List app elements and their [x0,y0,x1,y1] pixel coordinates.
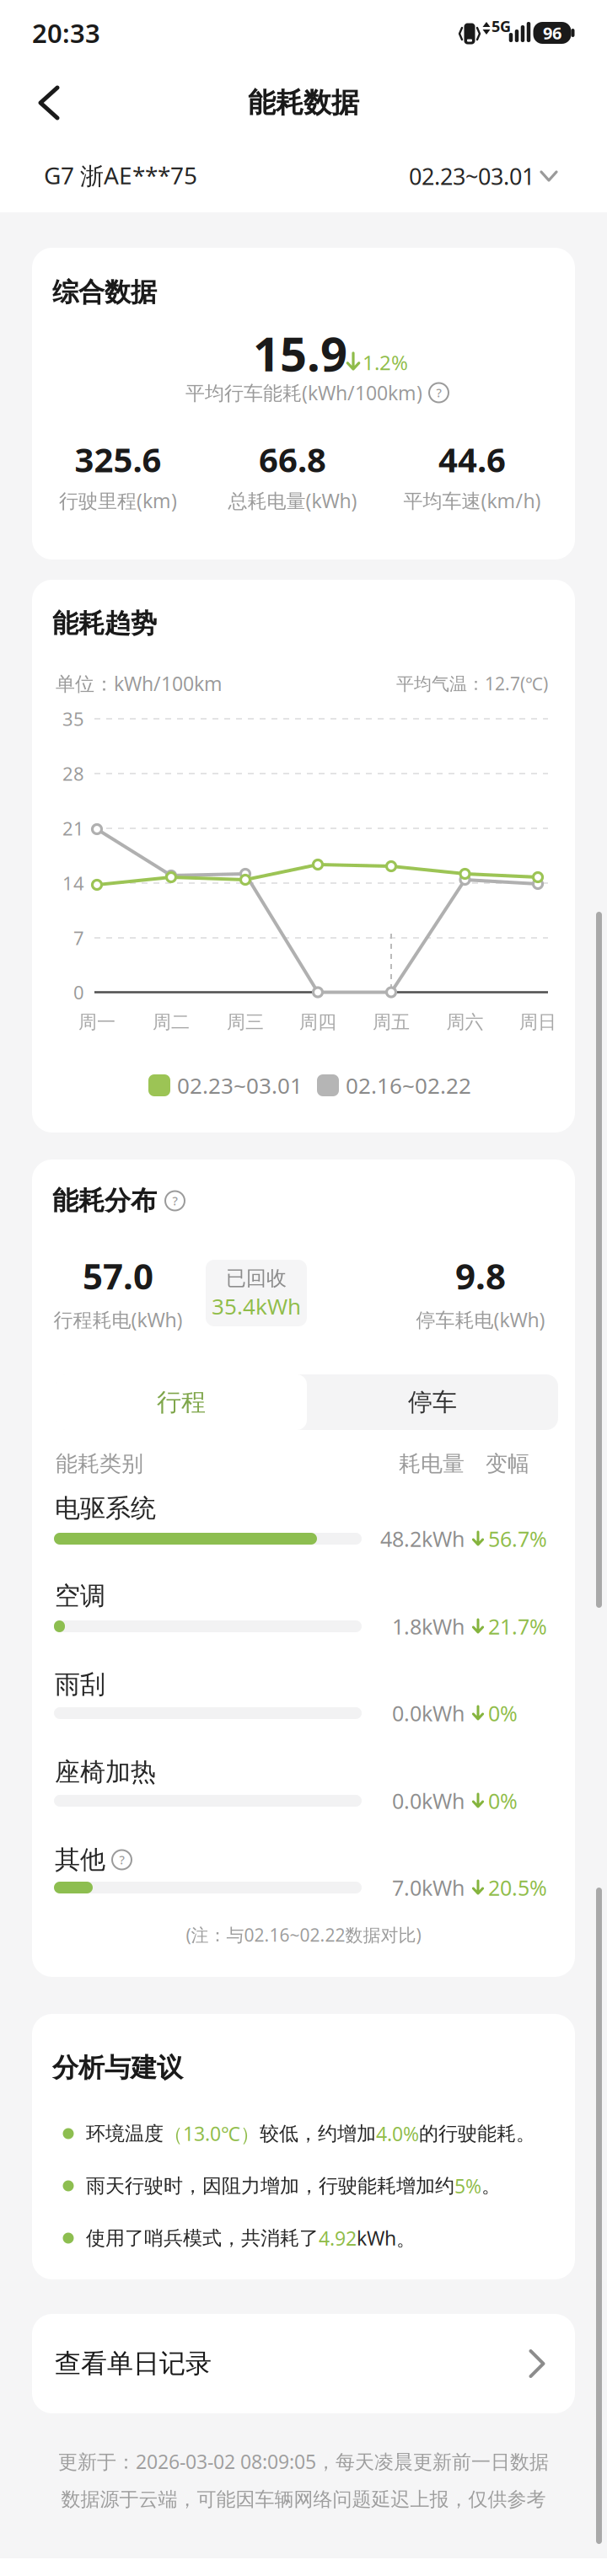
staticText: 35 [62,706,84,731]
staticText: 0 [73,980,84,1005]
staticText: 21 [62,816,84,841]
staticText: 周六 [446,1011,483,1034]
staticText: 5% [454,2173,481,2199]
staticText: 周五 [373,1011,410,1034]
staticText: 雨天行驶时，因阻力增加，行驶能耗增加约 [86,2174,454,2198]
staticText: kWh。 [357,2225,416,2251]
staticText: 20.5% [488,1874,547,1902]
staticText: 行程耗电(kWh) [54,1307,183,1332]
staticText: 21.7% [488,1612,547,1640]
staticText: 周四 [299,1011,336,1034]
staticText: ? [172,1193,177,1209]
staticText: 数据源于云端，可能因车辆网络问题延迟上报，仅供参考 [61,2487,546,2511]
staticText: 1.8kWh [392,1612,465,1640]
staticText: 行程 [157,1387,206,1417]
staticText: 电驱系统 [55,1493,156,1524]
staticText: 综合数据 [52,276,157,308]
staticText: 能耗趋势 [52,608,157,640]
staticText: 28 [62,761,84,786]
staticText: 4.92 [319,2225,357,2251]
staticText: 能耗类别 [56,1450,143,1477]
button[interactable]: 说明 [165,1191,185,1210]
staticText: 325.6 [75,437,161,482]
staticText: 使用了哨兵模式，共消耗了 [86,2226,319,2250]
staticText: 环境温度 [86,2122,164,2146]
staticText: 耗电量 [399,1450,465,1477]
staticText: 20:33 [32,16,100,50]
staticText: ? [119,1852,124,1868]
staticText: 座椅加热 [55,1757,156,1788]
staticText: 周一 [78,1011,115,1034]
staticText: 15.9 [253,322,347,384]
staticText: 变幅 [486,1450,529,1477]
staticText: 1.2% [363,349,408,376]
staticText: 4.0% [376,2121,419,2146]
staticText: 停车耗电(kWh) [416,1307,545,1332]
staticText: 66.8 [259,437,326,482]
button[interactable]: 02.23~03.01 [409,161,556,191]
staticText: 44.6 [438,437,506,482]
staticText: 平均行车能耗(kWh/100km) [185,380,422,405]
staticText: 7 [73,926,84,950]
staticText: 0.0kWh [392,1787,465,1815]
staticText: 周三 [227,1011,264,1034]
staticText: 周日 [519,1011,556,1034]
staticText: 查看单日记录 [55,2348,212,2380]
staticText: 9.8 [455,1252,506,1299]
staticText: 平均车速(km/h) [403,488,541,513]
button[interactable]: 说明 [429,383,449,402]
button[interactable]: 行程 [56,1374,307,1430]
staticText: 。 [481,2174,501,2198]
staticText: 雨刮 [55,1669,105,1700]
staticText: 更新于：2026-03-02 08:09:05，每天凌晨更新前一日数据 [58,2449,549,2474]
staticText: 平均气温：12.7(℃) [396,672,548,695]
button[interactable]: 说明 [112,1850,132,1869]
staticText: 02.23~03.01 [409,161,534,191]
staticText: G7 浙AE***75 [44,160,197,191]
staticText: 单位：kWh/100km [56,671,223,696]
staticText: 02.16~02.22 [346,1071,471,1100]
staticText: 其他 [55,1844,105,1875]
staticText: 总耗电量(kWh) [228,488,357,513]
staticText: 行驶里程(km) [59,488,177,513]
staticText: (注：与02.16~02.22数据对比) [186,1923,421,1947]
button[interactable]: 02.16~02.22 [317,1071,471,1100]
button[interactable]: 02.23~03.01 [148,1071,303,1100]
staticText: 0.0kWh [392,1699,465,1727]
staticText: 0% [488,1787,518,1815]
staticText: 周二 [153,1011,190,1034]
staticText: （13.0℃） [164,2121,260,2147]
staticText: 02.23~03.01 [177,1071,303,1100]
staticText: 48.2kWh [380,1525,465,1553]
staticText: 14 [62,871,84,895]
button[interactable]: 返回 [29,76,69,130]
staticText: 分析与建议 [52,2052,183,2084]
staticText: 5G [492,16,511,36]
staticText: 空调 [55,1580,105,1611]
staticText: 7.0kWh [392,1874,465,1902]
staticText: 0% [488,1699,518,1727]
staticText: ? [436,385,441,401]
staticText: 35.4kWh [212,1292,301,1321]
staticText: 57.0 [83,1252,153,1299]
staticText: 能耗数据 [248,86,359,120]
staticText: 的行驶能耗。 [419,2122,535,2146]
staticText: 能耗分布 [52,1185,157,1217]
staticText: 较低，约增加 [260,2122,376,2146]
staticText: 56.7% [488,1525,547,1553]
staticText: 停车 [408,1387,457,1417]
staticText: 已回收 [226,1266,287,1291]
button[interactable]: 查看单日记录 [32,2314,575,2413]
button[interactable]: 停车 [307,1374,558,1430]
staticText: 96 [543,22,561,44]
